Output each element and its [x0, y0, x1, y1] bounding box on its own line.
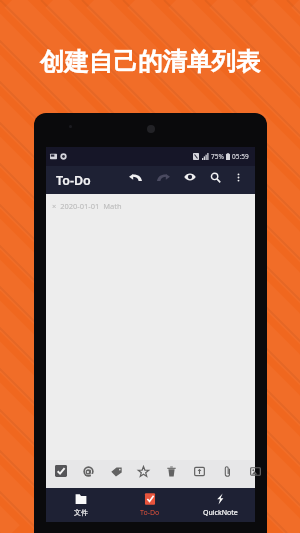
- button[interactable]: Star: [132, 460, 154, 482]
- button[interactable]: Image: [244, 460, 266, 482]
- button[interactable]: Attach: [216, 460, 238, 482]
- button[interactable]: Search: [204, 166, 226, 188]
- button[interactable]: QuickNote: [185, 488, 255, 522]
- staticText: 创建自己的清单列表: [0, 46, 300, 77]
- button[interactable]: Delete: [160, 460, 182, 482]
- staticText: 75%: [211, 152, 224, 161]
- button[interactable]: Undo: [124, 166, 146, 188]
- staticText: 文件: [74, 508, 88, 517]
- button[interactable]: Checkbox: [50, 460, 72, 482]
- button[interactable]: Tag: [105, 460, 127, 482]
- staticText: QuickNote: [203, 508, 238, 518]
- staticText: × 2020-01-01 Math: [52, 201, 122, 211]
- button[interactable]: Redo: [152, 166, 174, 188]
- button[interactable]: 文件: [46, 488, 115, 522]
- button[interactable]: Export: [188, 460, 210, 482]
- button[interactable]: To-Do: [115, 488, 185, 522]
- staticText: 05:59: [232, 152, 249, 161]
- button[interactable]: Preview: [179, 166, 201, 188]
- staticText: To-Do: [56, 172, 91, 189]
- staticText: To-Do: [140, 508, 160, 518]
- button[interactable]: More options: [227, 166, 249, 188]
- button[interactable]: Mention: [77, 460, 99, 482]
